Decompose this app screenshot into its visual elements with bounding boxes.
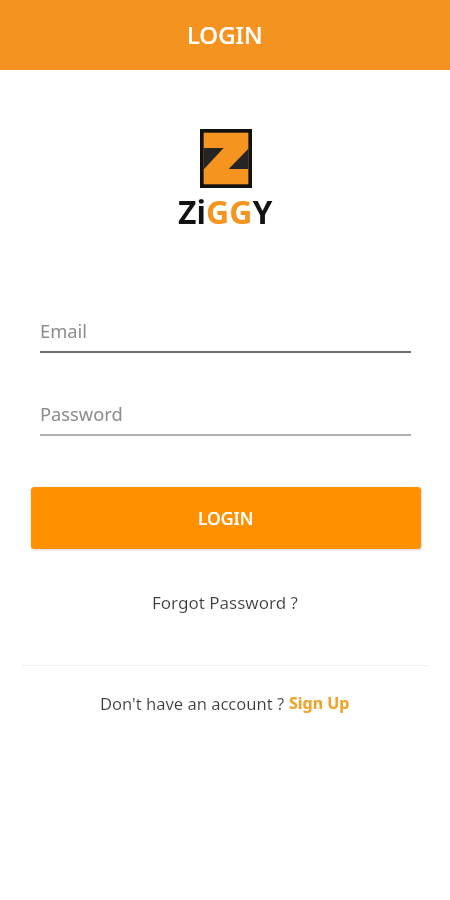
staticText: LOGIN [187, 18, 263, 51]
staticText: Don't have an account ? [100, 692, 289, 714]
button[interactable]: Email [40, 318, 411, 353]
staticText: LOGIN [198, 506, 254, 530]
staticText: Password [40, 401, 123, 426]
button[interactable]: Forgot Password ? [140, 584, 310, 621]
staticText: Forgot Password ? [152, 591, 298, 614]
other: Ziggy logo [200, 129, 252, 188]
button[interactable]: Password [40, 401, 411, 436]
staticText: Sign Up [289, 692, 350, 714]
button[interactable]: LOGIN [31, 487, 421, 549]
staticText: ZiGGY [178, 190, 273, 234]
staticText: Email [40, 318, 87, 343]
button[interactable]: Sign Up [289, 692, 350, 714]
